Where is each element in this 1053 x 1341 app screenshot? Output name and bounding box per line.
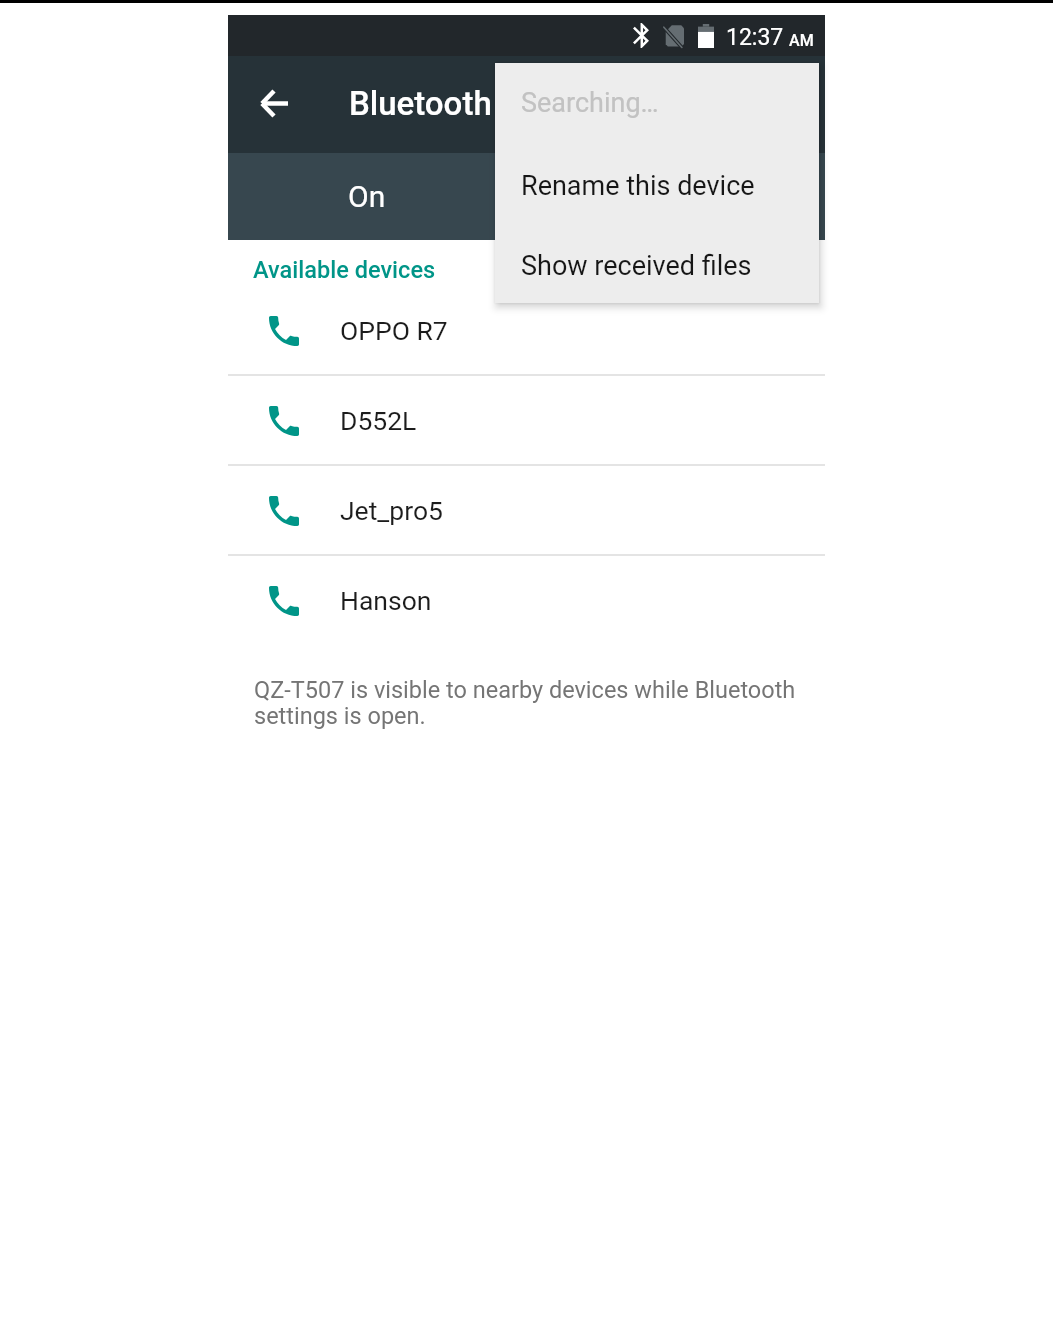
staticText: On (348, 179, 386, 214)
button[interactable]: Hanson (228, 556, 825, 646)
button[interactable]: Show received files (495, 223, 819, 303)
staticText: Available devices (253, 256, 436, 284)
staticText: Searching… (521, 87, 659, 119)
button[interactable]: OPPO R7 (228, 286, 825, 376)
staticText: Jet_pro5 (340, 495, 443, 526)
button[interactable]: D552L (228, 376, 825, 466)
staticText: Rename this device (521, 170, 755, 202)
staticText: Hanson (340, 585, 432, 616)
staticText: QZ-T507 is visible to nearby devices whi… (254, 676, 799, 730)
staticText: AM (789, 31, 814, 50)
staticText: Bluetooth (349, 84, 492, 123)
button[interactable]: Jet_pro5 (228, 466, 825, 556)
button[interactable]: Rename this device (495, 143, 819, 223)
staticText: D552L (340, 405, 417, 436)
button[interactable]: Navigate up (244, 73, 304, 133)
button[interactable]: Searching… (495, 63, 819, 143)
staticText: 12:37 (726, 24, 784, 51)
button[interactable]: On (228, 153, 505, 240)
staticText: Show received files (521, 250, 752, 282)
staticText: OPPO R7 (340, 315, 448, 346)
